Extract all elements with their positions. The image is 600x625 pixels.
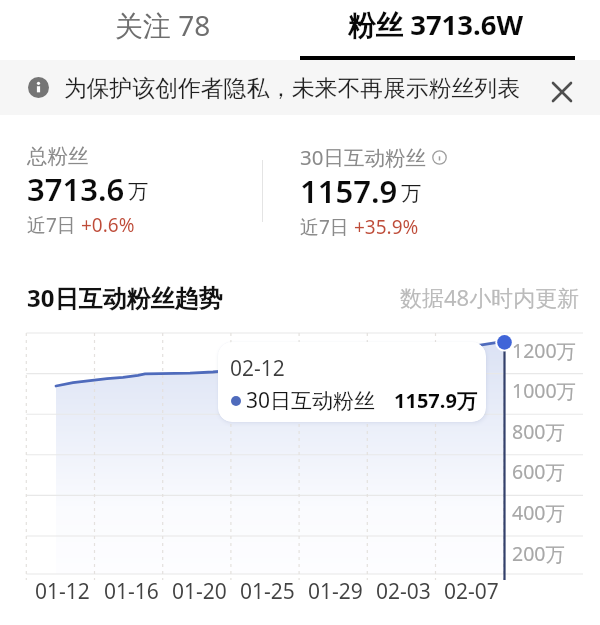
staticText: 为保护该创作者隐私，未来不再展示粉丝列表: [64, 74, 520, 103]
staticText: 1157.9: [300, 170, 398, 212]
button[interactable]: 关注 78: [24, 0, 302, 58]
staticText: 02-03: [376, 577, 431, 606]
staticText: 近7日: [27, 212, 81, 238]
staticText: 总粉丝: [27, 143, 89, 169]
staticText: 粉丝 3713.6W: [348, 6, 524, 44]
staticText: 30日互动粉丝: [246, 386, 376, 415]
staticText: +35.9%: [354, 214, 419, 240]
button[interactable]: Close: [540, 70, 584, 114]
staticText: 01-25: [240, 577, 295, 606]
staticText: 600万: [512, 458, 565, 485]
staticText: 02-12: [230, 354, 285, 383]
staticText: 1200万: [512, 337, 577, 364]
staticText: 万: [401, 181, 421, 206]
staticText: 近7日: [300, 214, 354, 240]
staticText: 800万: [512, 418, 565, 445]
staticText: 200万: [512, 540, 565, 567]
staticText: 01-16: [104, 577, 159, 606]
staticText: 万: [128, 179, 148, 204]
staticText: 3713.6: [27, 168, 125, 210]
staticText: 01-29: [308, 577, 363, 606]
staticText: 关注 78: [115, 6, 211, 44]
button[interactable]: 粉丝 3713.6W: [300, 0, 572, 58]
staticText: 400万: [512, 499, 565, 526]
staticText: 1157.9万: [394, 387, 477, 414]
staticText: 01-12: [35, 577, 90, 606]
staticText: 01-20: [172, 577, 227, 606]
staticText: 02-07: [444, 577, 499, 606]
staticText: 30日互动粉丝趋势: [27, 281, 223, 314]
staticText: 1000万: [512, 377, 577, 404]
staticText: 30日互动粉丝: [300, 143, 426, 171]
staticText: 数据48小时内更新: [400, 282, 580, 312]
staticText: +0.6%: [81, 212, 135, 238]
